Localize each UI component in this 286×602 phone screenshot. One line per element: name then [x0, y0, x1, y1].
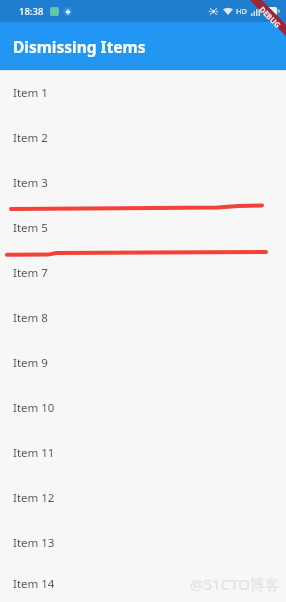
staticText: 18:38	[19, 5, 44, 18]
staticText: Item 13	[13, 535, 55, 551]
staticText: Item 12	[13, 490, 55, 506]
staticText: Item 7	[13, 265, 48, 281]
staticText: Item 8	[13, 310, 48, 326]
staticText: DEBUG	[257, 4, 283, 30]
button[interactable]: Item 11	[0, 430, 286, 475]
staticText: Item 2	[13, 130, 48, 146]
button[interactable]: Item 9	[0, 340, 286, 385]
other: Debug banner	[240, 0, 286, 46]
button[interactable]: Item 5	[0, 205, 286, 250]
button[interactable]: Item 12	[0, 475, 286, 520]
button[interactable]: Dismissing Items	[0, 22, 286, 70]
button[interactable]: Item 2	[0, 115, 286, 160]
button[interactable]: Item 8	[0, 295, 286, 340]
staticText: Item 10	[13, 400, 55, 416]
button[interactable]: Item 3	[0, 160, 286, 205]
staticText: Item 14	[13, 576, 55, 592]
staticText: Item 9	[13, 355, 48, 371]
button[interactable]: Item 10	[0, 385, 286, 430]
staticText: Item 3	[13, 175, 48, 191]
button[interactable]: Item 1	[0, 70, 286, 115]
staticText: Item 11	[13, 445, 55, 461]
staticText: @51CTO博客	[190, 574, 280, 594]
button[interactable]: Item 13	[0, 520, 286, 565]
staticText: Dismissing Items	[13, 36, 146, 57]
staticText: HD	[236, 6, 248, 16]
button[interactable]: Item 7	[0, 250, 286, 295]
button[interactable]: Item 14	[0, 565, 286, 602]
staticText: Item 5	[13, 220, 48, 236]
staticText: Item 1	[13, 85, 48, 101]
